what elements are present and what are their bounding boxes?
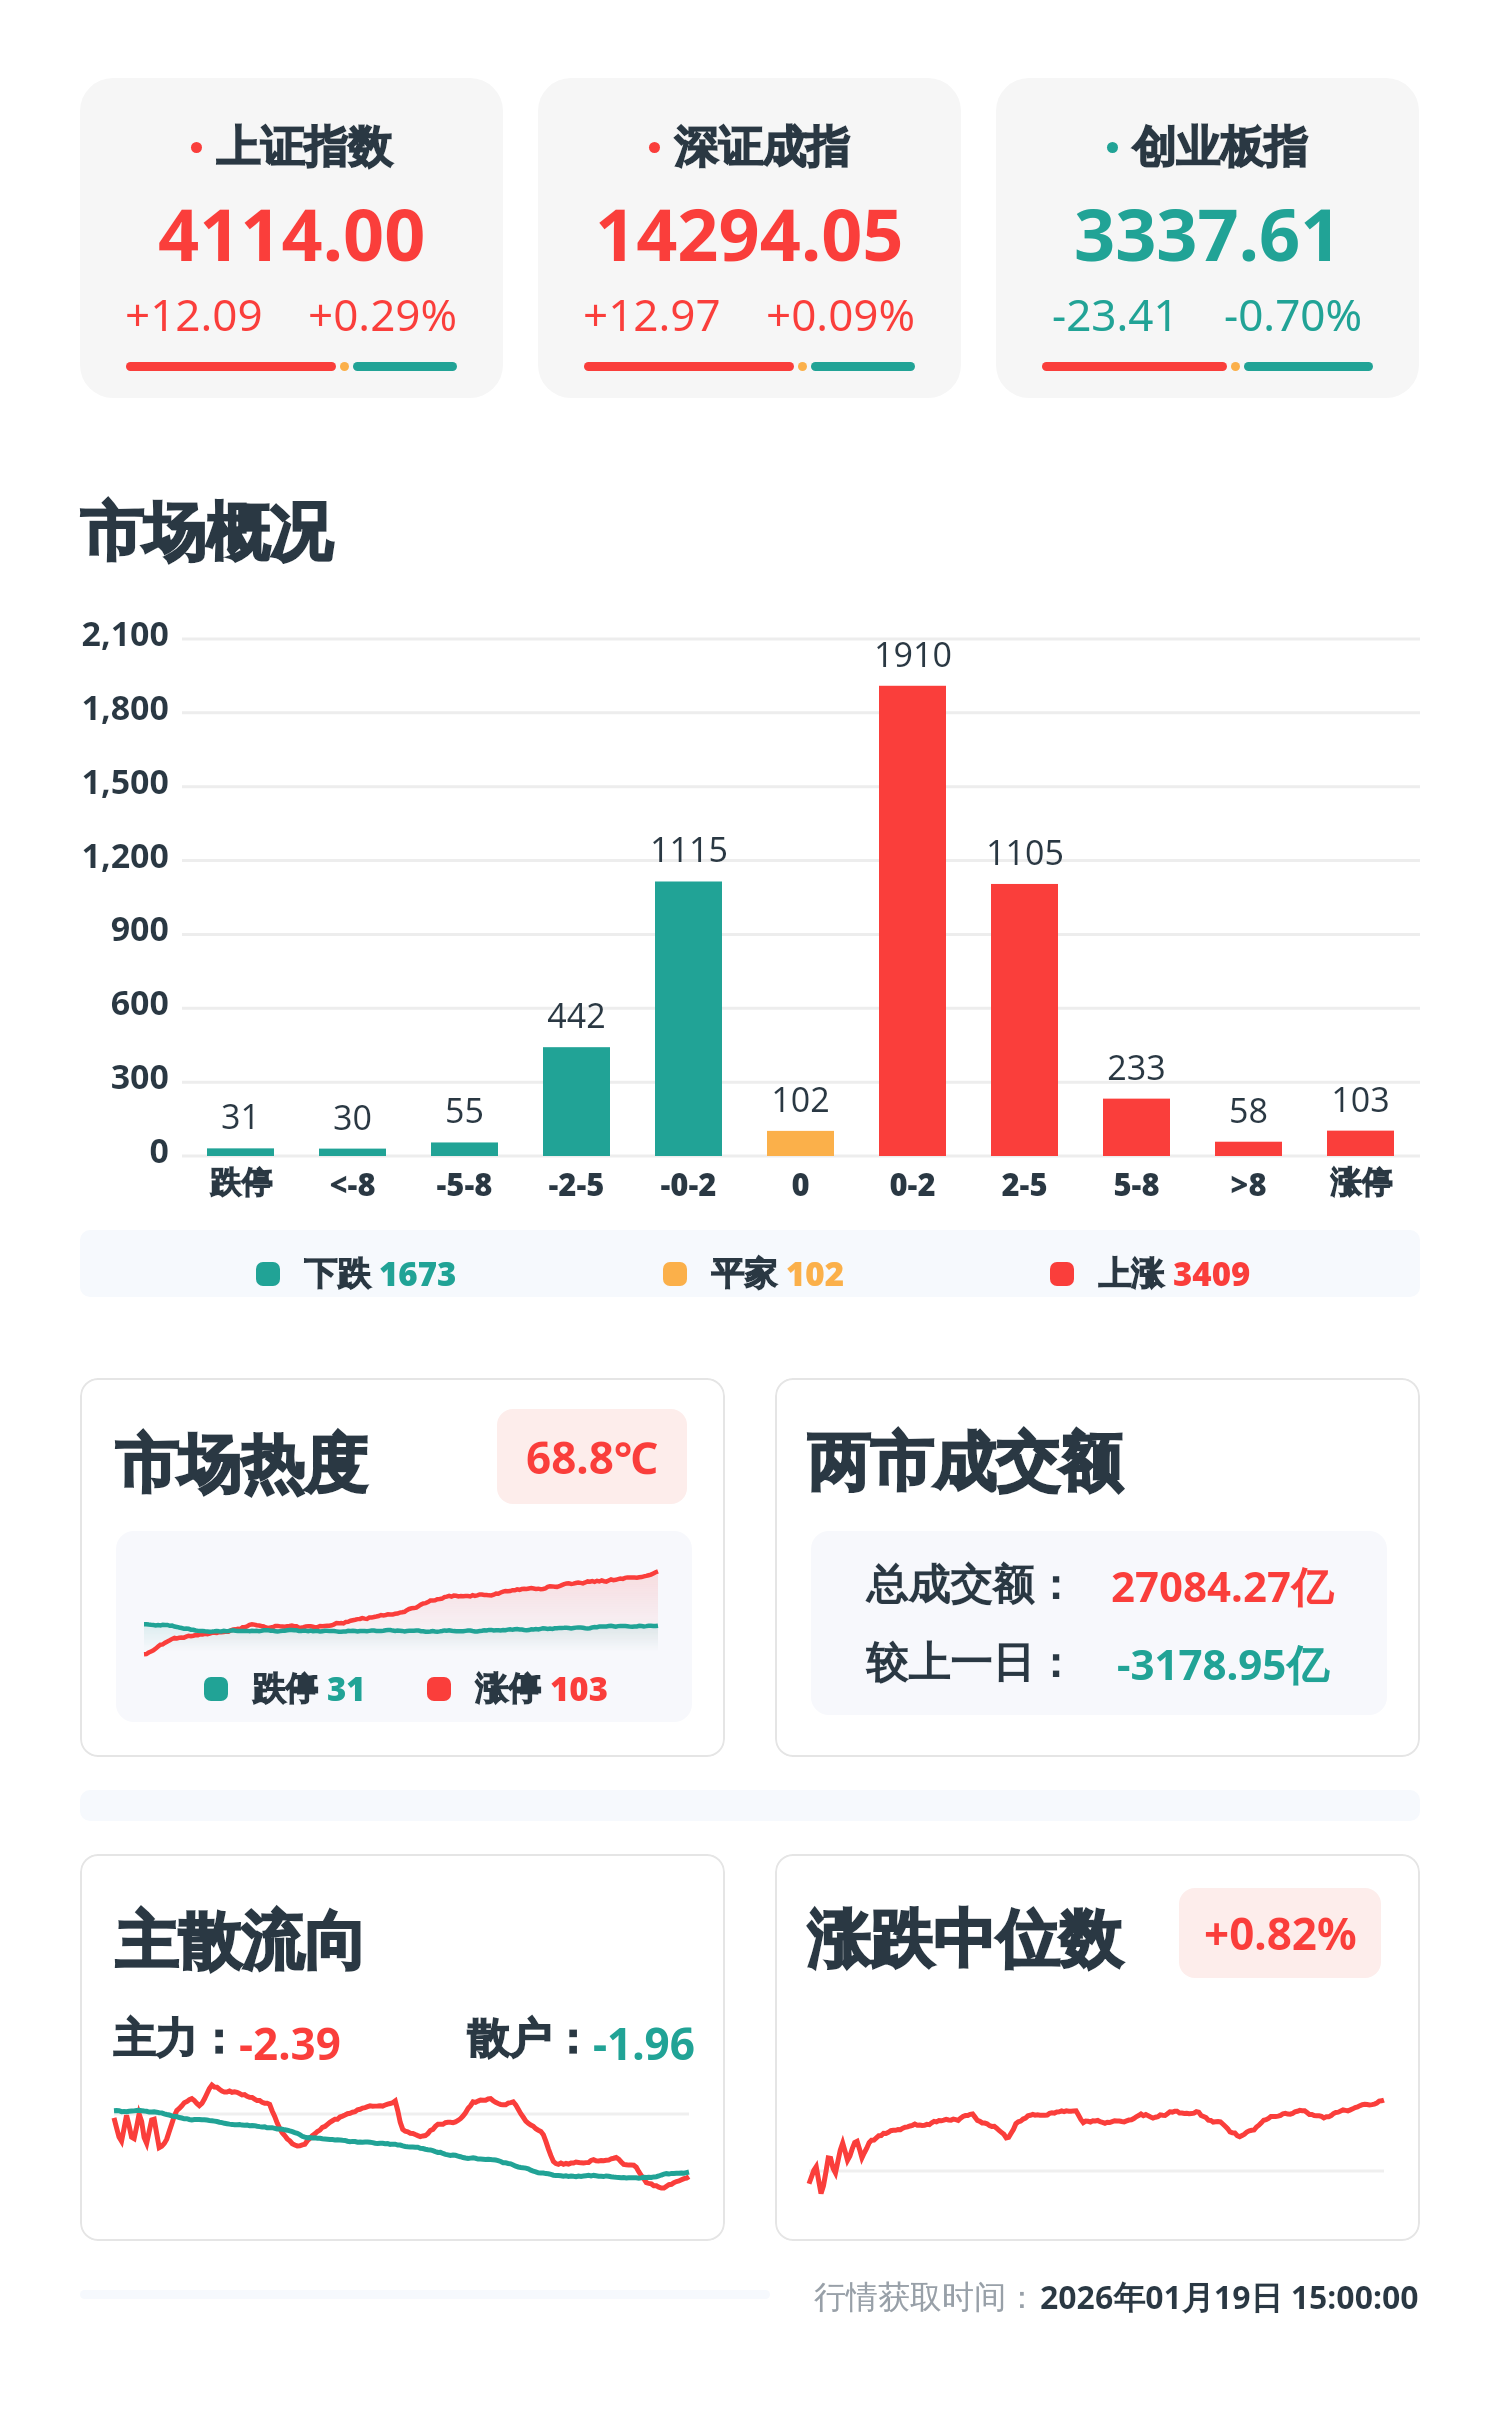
staticText: 1910 xyxy=(874,631,952,677)
staticText: 30 xyxy=(333,1094,372,1140)
staticText: 跌停 xyxy=(252,1668,318,1710)
staticText: 900 xyxy=(110,905,169,951)
staticText: 平家 xyxy=(711,1253,777,1295)
staticText: +0.82% xyxy=(1204,1903,1357,1963)
staticText: 3409 xyxy=(1173,1251,1251,1296)
staticText: 300 xyxy=(110,1053,169,1099)
staticText: 31 xyxy=(221,1093,260,1139)
staticText: 市场概况 xyxy=(80,493,332,572)
staticText: 市场热度 xyxy=(115,1425,367,1504)
staticText: +12.09 xyxy=(125,284,263,344)
staticText: 涨停 xyxy=(475,1668,541,1710)
button[interactable]: 下跌 xyxy=(256,1251,457,1296)
button[interactable]: 上证指数 xyxy=(80,78,503,398)
staticText: 2-5 xyxy=(1001,1163,1048,1205)
staticText: +12.97 xyxy=(583,284,721,344)
staticText: 散户： xyxy=(467,2013,593,2066)
staticText: 0 xyxy=(791,1163,810,1205)
staticText: 涨跌中位数 xyxy=(807,1900,1122,1979)
button[interactable]: 两市成交额 xyxy=(775,1378,1420,1757)
staticText: 31 xyxy=(327,1666,366,1711)
button[interactable]: 68.8℃ xyxy=(497,1409,687,1504)
staticText: 涨停 xyxy=(1330,1163,1392,1202)
button[interactable]: 深证成指 xyxy=(538,78,961,398)
staticText: 233 xyxy=(1107,1044,1166,1090)
staticText: -2.39 xyxy=(239,2013,341,2073)
staticText: 27084.27亿 xyxy=(1111,1557,1333,1614)
staticText: 68.8℃ xyxy=(526,1427,659,1487)
button[interactable]: 平家 xyxy=(663,1251,845,1296)
staticText: -0-2 xyxy=(660,1163,717,1205)
button[interactable]: 涨停 xyxy=(427,1666,609,1711)
staticText: 600 xyxy=(110,979,169,1025)
button[interactable]: 上涨 xyxy=(1050,1251,1251,1296)
staticText: 下跌 xyxy=(304,1253,370,1295)
staticText: 3337.61 xyxy=(1074,184,1342,282)
staticText: 4114.00 xyxy=(158,184,426,282)
staticText: 0 xyxy=(149,1127,169,1173)
button[interactable]: 创业板指 xyxy=(996,78,1419,398)
staticText: 行情获取时间： xyxy=(814,2277,1038,2317)
staticText: 跌停 xyxy=(210,1163,272,1202)
staticText: 442 xyxy=(547,992,606,1038)
button[interactable]: +0.82% xyxy=(1179,1888,1381,1978)
button[interactable]: 涨跌分布图 xyxy=(0,620,1500,1230)
button[interactable]: 主散流向 xyxy=(80,1854,725,2241)
staticText: 2026年01月19日 15:00:00 xyxy=(1040,2275,1419,2319)
staticText: 102 xyxy=(786,1251,845,1296)
button[interactable]: 涨跌中位数 xyxy=(775,1854,1420,2241)
button[interactable]: 跌停 xyxy=(204,1666,366,1711)
staticText: 较上一日： xyxy=(866,1637,1076,1690)
staticText: 总成交额： xyxy=(866,1559,1076,1612)
staticText: -5-8 xyxy=(436,1163,493,1205)
staticText: 1,200 xyxy=(81,832,169,878)
staticText: -1.96 xyxy=(593,2013,695,2073)
staticText: 创业板指 xyxy=(1132,120,1308,175)
staticText: <-8 xyxy=(329,1163,376,1205)
staticText: +0.29% xyxy=(308,284,458,344)
staticText: 两市成交额 xyxy=(807,1423,1122,1502)
staticText: 14294.05 xyxy=(595,184,904,282)
staticText: 1105 xyxy=(986,829,1064,875)
staticText: 2,100 xyxy=(81,610,169,656)
staticText: 102 xyxy=(771,1076,830,1122)
staticText: +0.09% xyxy=(766,284,916,344)
staticText: -23.41 xyxy=(1052,284,1179,344)
staticText: -2-5 xyxy=(548,1163,605,1205)
staticText: 1,800 xyxy=(81,684,169,730)
staticText: 0-2 xyxy=(889,1163,936,1205)
staticText: 103 xyxy=(550,1666,609,1711)
staticText: -3178.95亿 xyxy=(1117,1635,1329,1692)
staticText: 1115 xyxy=(650,826,728,872)
staticText: -0.70% xyxy=(1224,284,1363,344)
staticText: 主力： xyxy=(113,2013,239,2066)
staticText: 主散流向 xyxy=(115,1902,367,1981)
staticText: 103 xyxy=(1331,1076,1390,1122)
staticText: 1,500 xyxy=(81,758,169,804)
staticText: 上证指数 xyxy=(216,120,392,175)
staticText: 1673 xyxy=(379,1251,457,1296)
staticText: 58 xyxy=(1229,1087,1268,1133)
staticText: 5-8 xyxy=(1113,1163,1160,1205)
staticText: 上涨 xyxy=(1098,1253,1164,1295)
button[interactable]: 市场热度 xyxy=(80,1378,725,1757)
staticText: 深证成指 xyxy=(674,120,850,175)
staticText: 55 xyxy=(445,1087,484,1133)
button[interactable]: 下跌 xyxy=(80,1230,1420,1297)
staticText: >8 xyxy=(1230,1163,1267,1205)
